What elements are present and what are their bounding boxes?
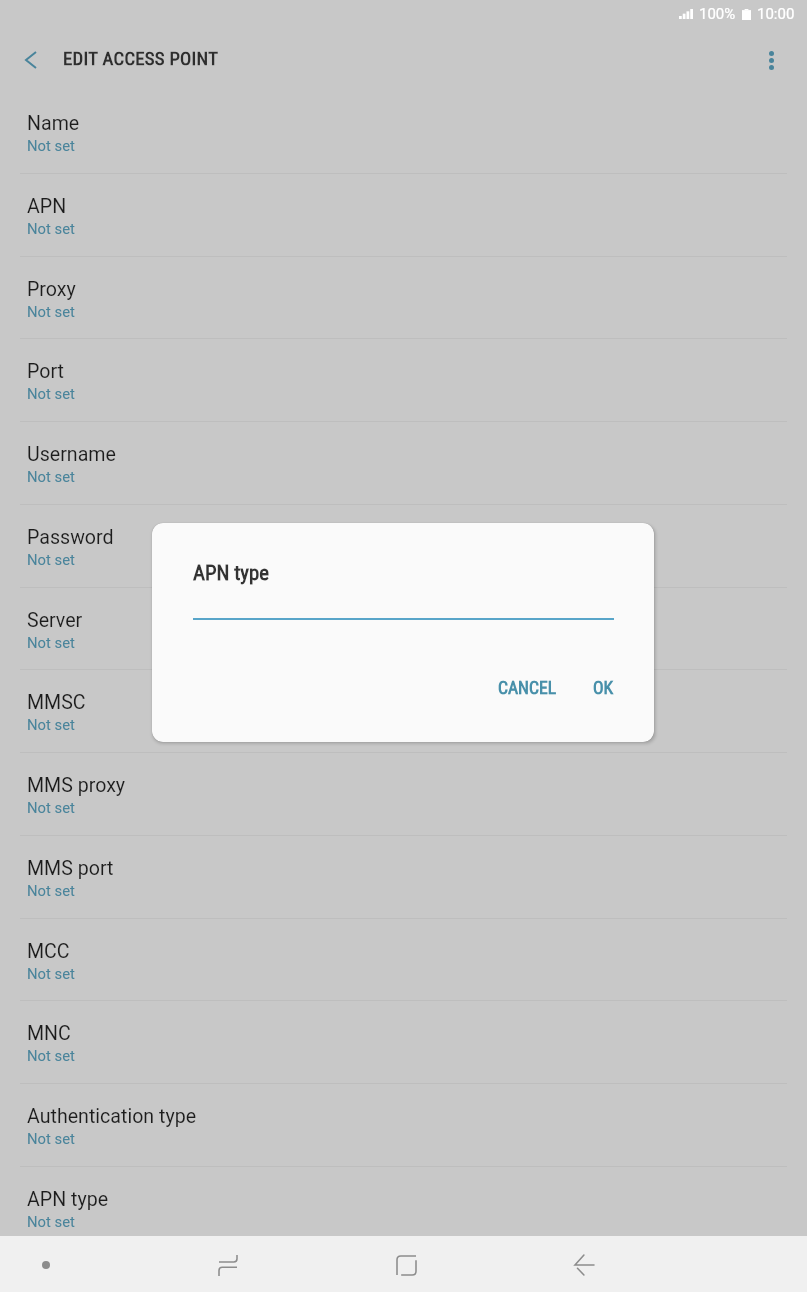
staticText: Not set xyxy=(27,799,75,816)
button[interactable]: Hide navigation bar xyxy=(5,1237,87,1292)
staticText: APN type xyxy=(193,561,269,585)
staticText: Not set xyxy=(27,303,75,320)
button[interactable]: Port xyxy=(0,338,807,421)
staticText: MMS port xyxy=(27,857,114,880)
staticText: APN xyxy=(27,195,67,218)
button[interactable]: MMSC xyxy=(0,669,807,752)
button[interactable]: More options xyxy=(747,36,795,84)
staticText: MNC xyxy=(27,1022,71,1045)
staticText: MCC xyxy=(27,940,70,963)
button[interactable]: Home xyxy=(346,1237,466,1292)
staticText: Port xyxy=(27,360,64,383)
staticText: Not set xyxy=(27,1047,75,1064)
staticText: MMSC xyxy=(27,691,86,714)
button[interactable]: Navigate up xyxy=(7,36,55,84)
staticText: CANCEL xyxy=(498,678,557,699)
staticText: EDIT ACCESS POINT xyxy=(63,48,219,70)
staticText: 10:00 xyxy=(757,5,795,23)
staticText: Not set xyxy=(27,1213,75,1230)
staticText: Not set xyxy=(27,1130,75,1147)
button[interactable]: MNC xyxy=(0,1000,807,1083)
staticText: Not set xyxy=(27,965,75,982)
button[interactable]: MCC xyxy=(0,918,807,1001)
staticText: Not set xyxy=(27,468,75,485)
button[interactable]: Back xyxy=(524,1237,644,1292)
staticText: 100% xyxy=(699,5,736,23)
staticText: Proxy xyxy=(27,278,76,301)
button[interactable]: Authentication type xyxy=(0,1083,807,1166)
staticText: Name xyxy=(27,112,80,135)
staticText: APN type xyxy=(27,1188,109,1211)
staticText: Not set xyxy=(27,137,75,154)
button[interactable]: Password xyxy=(0,504,807,587)
staticText: Not set xyxy=(27,716,75,733)
button[interactable]: Username xyxy=(0,421,807,504)
staticText: Username xyxy=(27,443,116,466)
staticText: Not set xyxy=(27,882,75,899)
button[interactable]: MMS port xyxy=(0,835,807,918)
button[interactable]: Proxy xyxy=(0,256,807,339)
staticText: Not set xyxy=(27,634,75,651)
button[interactable]: Name xyxy=(0,90,807,173)
button[interactable]: CANCEL xyxy=(488,667,567,710)
staticText: Not set xyxy=(27,220,75,237)
staticText: Authentication type xyxy=(27,1105,197,1128)
staticText: Password xyxy=(27,526,114,549)
button[interactable]: Server xyxy=(0,587,807,670)
staticText: Not set xyxy=(27,551,75,568)
staticText: MMS proxy xyxy=(27,774,126,797)
button[interactable]: APN xyxy=(0,173,807,256)
button[interactable]: APN type xyxy=(0,1166,807,1249)
staticText: OK xyxy=(593,678,614,699)
button[interactable]: OK xyxy=(583,667,624,710)
button[interactable]: Recents xyxy=(168,1237,288,1292)
staticText: Not set xyxy=(27,385,75,402)
button[interactable]: MMS proxy xyxy=(0,752,807,835)
staticText: Server xyxy=(27,609,83,632)
